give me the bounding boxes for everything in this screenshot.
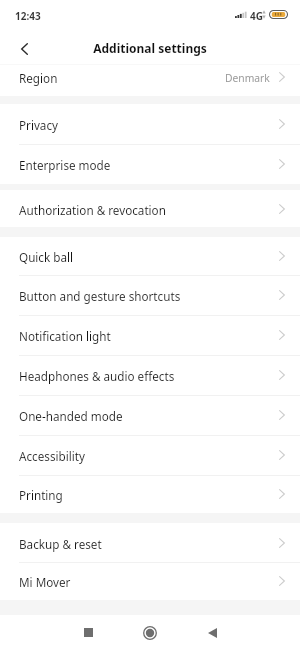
button[interactable]: Backup & reset — [0, 523, 300, 563]
staticText: Enterprise mode — [19, 157, 111, 173]
staticText: Mi Mover — [19, 574, 71, 590]
button[interactable]: Enterprise mode — [0, 144, 300, 184]
button[interactable]: Region — [0, 58, 300, 96]
button[interactable]: Notification light — [0, 315, 300, 355]
button[interactable]: One-handed mode — [0, 395, 300, 435]
staticText: Privacy — [19, 117, 58, 133]
staticText: 4G — [250, 9, 263, 23]
staticText: Additional settings — [93, 40, 207, 56]
staticText: Authorization & revocation — [19, 202, 166, 218]
staticText: Accessibility — [19, 448, 85, 464]
staticText: Notification light — [19, 328, 111, 344]
button[interactable]: Accessibility — [0, 435, 300, 475]
staticText: Printing — [19, 487, 63, 503]
staticText: 12:43 — [15, 9, 41, 23]
button[interactable]: Printing — [0, 475, 300, 513]
staticText: Region — [19, 70, 58, 86]
button[interactable]: Headphones & audio effects — [0, 355, 300, 395]
staticText: Backup & reset — [19, 536, 102, 552]
button[interactable]: Privacy — [0, 104, 300, 144]
staticText: One-handed mode — [19, 408, 123, 424]
staticText: Quick ball — [19, 249, 74, 265]
staticText: Button and gesture shortcuts — [19, 288, 181, 304]
button[interactable]: Button and gesture shortcuts — [0, 275, 300, 315]
button[interactable]: Back — [192, 615, 232, 650]
button[interactable]: Back — [0, 28, 46, 58]
staticText: Headphones & audio effects — [19, 368, 175, 384]
staticText: Denmark — [225, 71, 270, 85]
button[interactable]: Authorization & revocation — [0, 190, 300, 227]
button[interactable]: Recent apps — [68, 615, 108, 650]
button[interactable]: Mi Mover — [0, 562, 300, 600]
button[interactable]: Home — [130, 615, 170, 650]
button[interactable]: Quick ball — [0, 237, 300, 275]
